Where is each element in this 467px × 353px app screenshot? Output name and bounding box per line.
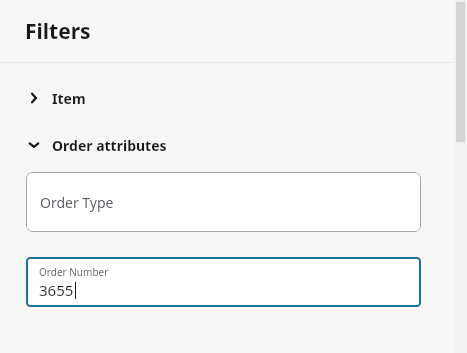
button[interactable]: Order Number <box>26 257 421 307</box>
button[interactable]: Expand Item section <box>0 85 467 111</box>
staticText: Order Type <box>40 193 114 212</box>
button[interactable]: Order Type <box>26 172 421 232</box>
staticText: 3655 <box>39 280 74 300</box>
button[interactable]: Collapse Order attributes section <box>0 132 467 158</box>
staticText: Item <box>52 89 86 108</box>
staticText: Order Number <box>39 265 109 279</box>
staticText: Filters <box>25 17 91 46</box>
staticText: Order attributes <box>52 136 167 155</box>
